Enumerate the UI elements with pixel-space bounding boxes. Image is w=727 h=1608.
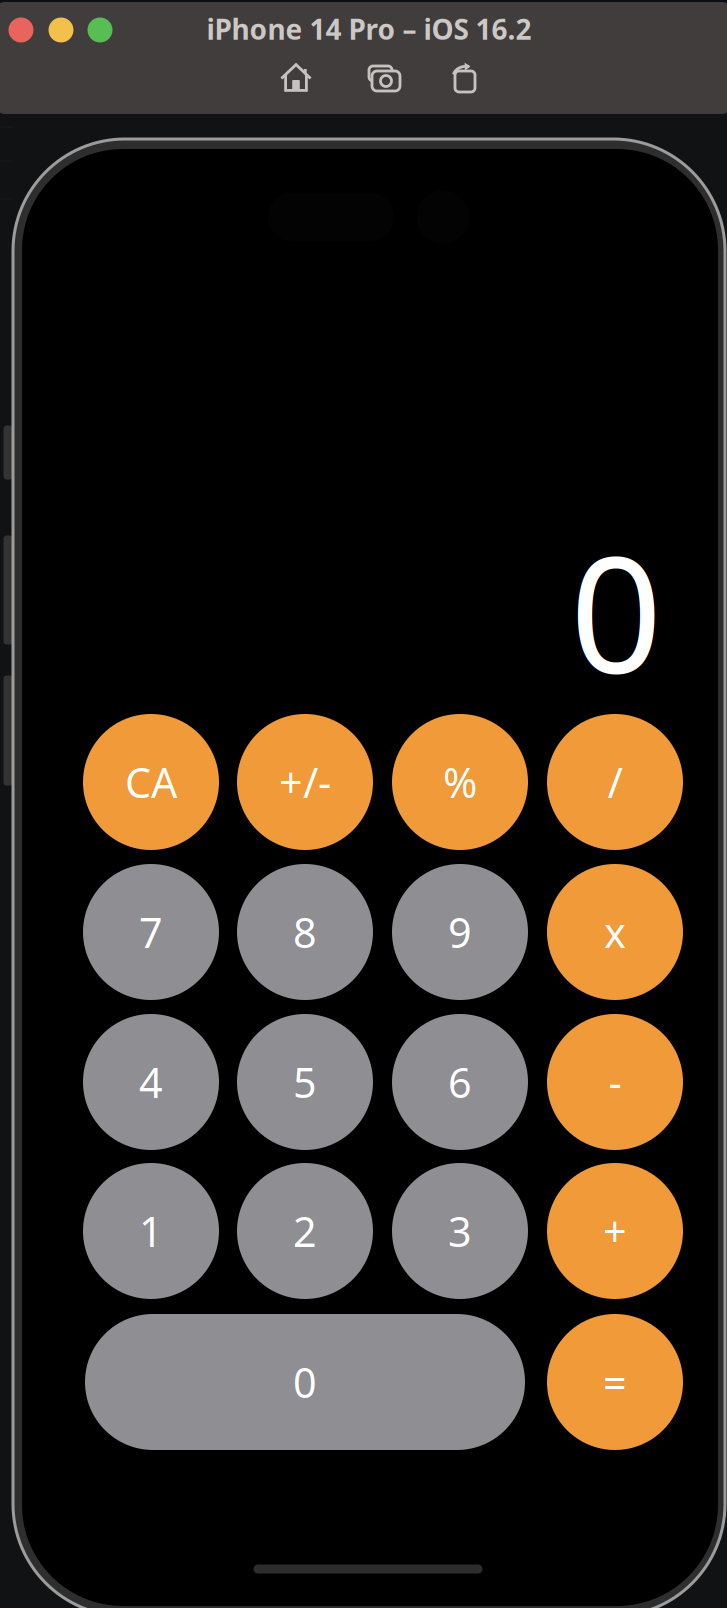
button[interactable]: 6: [392, 1014, 528, 1150]
button[interactable]: %: [392, 714, 528, 850]
staticText: iPhone 14 Pro – iOS 16.2: [206, 10, 531, 48]
button[interactable]: -: [547, 1014, 683, 1150]
button[interactable]: 4: [83, 1014, 219, 1150]
staticText: 0: [293, 1355, 317, 1409]
staticText: %: [443, 755, 477, 809]
staticText: 0: [570, 503, 662, 717]
button[interactable]: CA: [83, 714, 219, 850]
button[interactable]: Home: [280, 62, 312, 92]
staticText: 7: [139, 905, 163, 959]
button[interactable]: 8: [237, 864, 373, 1000]
staticText: 5: [293, 1055, 317, 1109]
button[interactable]: 1: [83, 1163, 219, 1299]
button[interactable]: +/-: [237, 714, 373, 850]
staticText: /: [607, 755, 622, 809]
staticText: =: [603, 1355, 627, 1409]
staticText: +/-: [279, 755, 331, 809]
staticText: 4: [139, 1055, 163, 1109]
button[interactable]: 2: [237, 1163, 373, 1299]
button[interactable]: Rotate: [451, 62, 479, 92]
button[interactable]: 9: [392, 864, 528, 1000]
button[interactable]: 5: [237, 1014, 373, 1150]
staticText: 3: [448, 1204, 472, 1258]
button[interactable]: 7: [83, 864, 219, 1000]
staticText: 1: [139, 1204, 163, 1258]
button[interactable]: 3: [392, 1163, 528, 1299]
staticText: -: [608, 1055, 621, 1109]
button[interactable]: Screenshot: [367, 62, 401, 92]
staticText: 6: [448, 1055, 472, 1109]
staticText: CA: [125, 755, 177, 809]
staticText: 8: [293, 905, 317, 959]
button[interactable]: x: [547, 864, 683, 1000]
button[interactable]: 0: [85, 1314, 525, 1450]
staticText: x: [604, 905, 626, 959]
staticText: +: [603, 1204, 627, 1258]
staticText: 9: [448, 905, 472, 959]
button[interactable]: =: [547, 1314, 683, 1450]
button[interactable]: +: [547, 1163, 683, 1299]
button[interactable]: /: [547, 714, 683, 850]
staticText: 2: [293, 1204, 317, 1258]
